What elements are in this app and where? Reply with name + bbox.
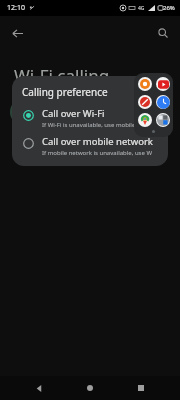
staticText: If Wi-Fi is unavailable, use mobile netw	[42, 121, 151, 129]
staticText: 12:10	[7, 3, 25, 13]
staticText: Call over mobile network	[42, 135, 153, 148]
button[interactable]: Recents	[129, 376, 153, 400]
staticText: Use Wi-Fi calling	[22, 106, 91, 118]
staticText: Calling preference	[22, 85, 108, 99]
button[interactable]: Call over mobile network	[22, 135, 160, 157]
staticText: Call over Wi-Fi	[42, 107, 105, 120]
staticText: 4G	[138, 5, 145, 12]
button[interactable]: Use Wi-Fi calling	[10, 99, 170, 125]
button[interactable]: App 4	[138, 113, 152, 127]
button[interactable]: App 5	[156, 113, 170, 127]
staticText: If mobile network is unavailable, use W	[42, 149, 153, 157]
button[interactable]: App 0	[138, 77, 152, 91]
button[interactable]: Home	[78, 376, 102, 400]
staticText: Calling preference	[14, 137, 92, 149]
staticText: Call over Wi-Fi	[14, 152, 61, 162]
button[interactable]: App 1	[156, 77, 170, 91]
button[interactable]: Back	[27, 376, 51, 400]
staticText: 26%	[163, 4, 175, 12]
button[interactable]: App 3	[156, 95, 170, 109]
staticText: Wi-Fi calling	[14, 64, 110, 87]
button[interactable]: Back	[5, 21, 29, 45]
button[interactable]: App 2	[138, 95, 152, 109]
button[interactable]: Call over Wi-Fi	[22, 107, 160, 129]
button[interactable]: Search	[151, 21, 175, 45]
